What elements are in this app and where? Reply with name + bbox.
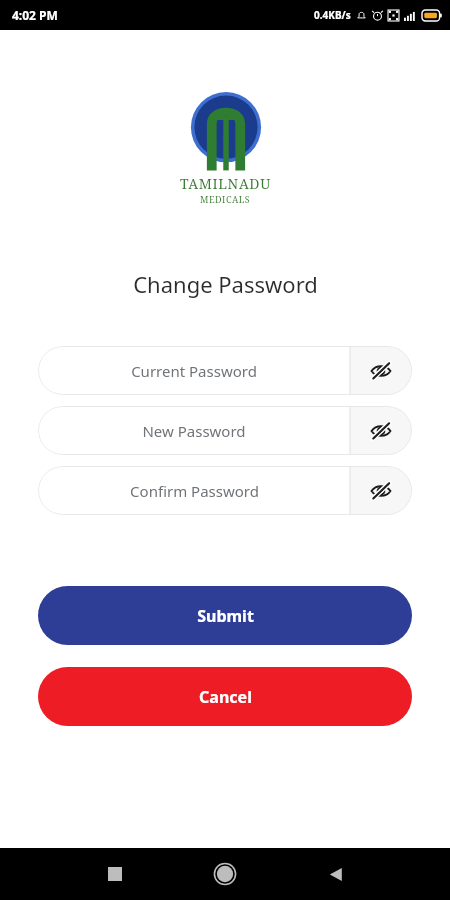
button[interactable]: Back (315, 854, 355, 894)
button[interactable]: Current Password (38, 346, 412, 395)
staticText: TAMILNADU (180, 174, 271, 193)
button[interactable]: New Password (38, 406, 412, 455)
staticText: Current Password (131, 361, 257, 381)
staticText: Change Password (133, 269, 318, 299)
button[interactable]: Toggle password visibility (350, 346, 412, 395)
staticText: New Password (142, 421, 246, 441)
button[interactable]: Cancel (38, 667, 412, 726)
staticText: Confirm Password (130, 481, 259, 501)
button[interactable]: Submit (38, 586, 412, 645)
button[interactable]: Toggle password visibility (350, 466, 412, 515)
button[interactable]: Recents (95, 854, 135, 894)
staticText: 4:02 PM (12, 7, 58, 23)
button[interactable]: Confirm Password (38, 466, 412, 515)
staticText: 0.4KB/s (314, 8, 351, 22)
staticText: MEDICALS (200, 193, 251, 205)
button[interactable]: Home (205, 854, 245, 894)
staticText: Submit (197, 605, 254, 627)
button[interactable]: Toggle password visibility (350, 406, 412, 455)
staticText: Cancel (199, 686, 252, 708)
